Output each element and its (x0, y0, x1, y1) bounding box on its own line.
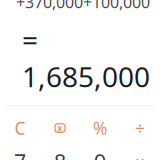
staticText: C (14, 116, 25, 139)
button[interactable]: C (0, 115, 40, 141)
staticText: % (93, 116, 107, 139)
button[interactable]: Backspace (40, 115, 80, 141)
staticText: ÷ (135, 116, 145, 139)
button[interactable]: 8 (40, 149, 80, 160)
button[interactable]: % (80, 115, 120, 141)
button[interactable]: ÷ (120, 115, 160, 141)
staticText: +370,000+100,000 (16, 0, 150, 13)
staticText: 9 (94, 148, 106, 160)
staticText: 8 (54, 148, 66, 160)
staticText: 7 (14, 148, 26, 160)
staticText: × (135, 150, 145, 160)
staticText: x (57, 123, 62, 133)
button[interactable]: 7 (0, 149, 40, 160)
button[interactable]: 9 (80, 149, 120, 160)
button[interactable]: × (120, 149, 160, 160)
staticText: = 1,685,000 (22, 21, 150, 95)
